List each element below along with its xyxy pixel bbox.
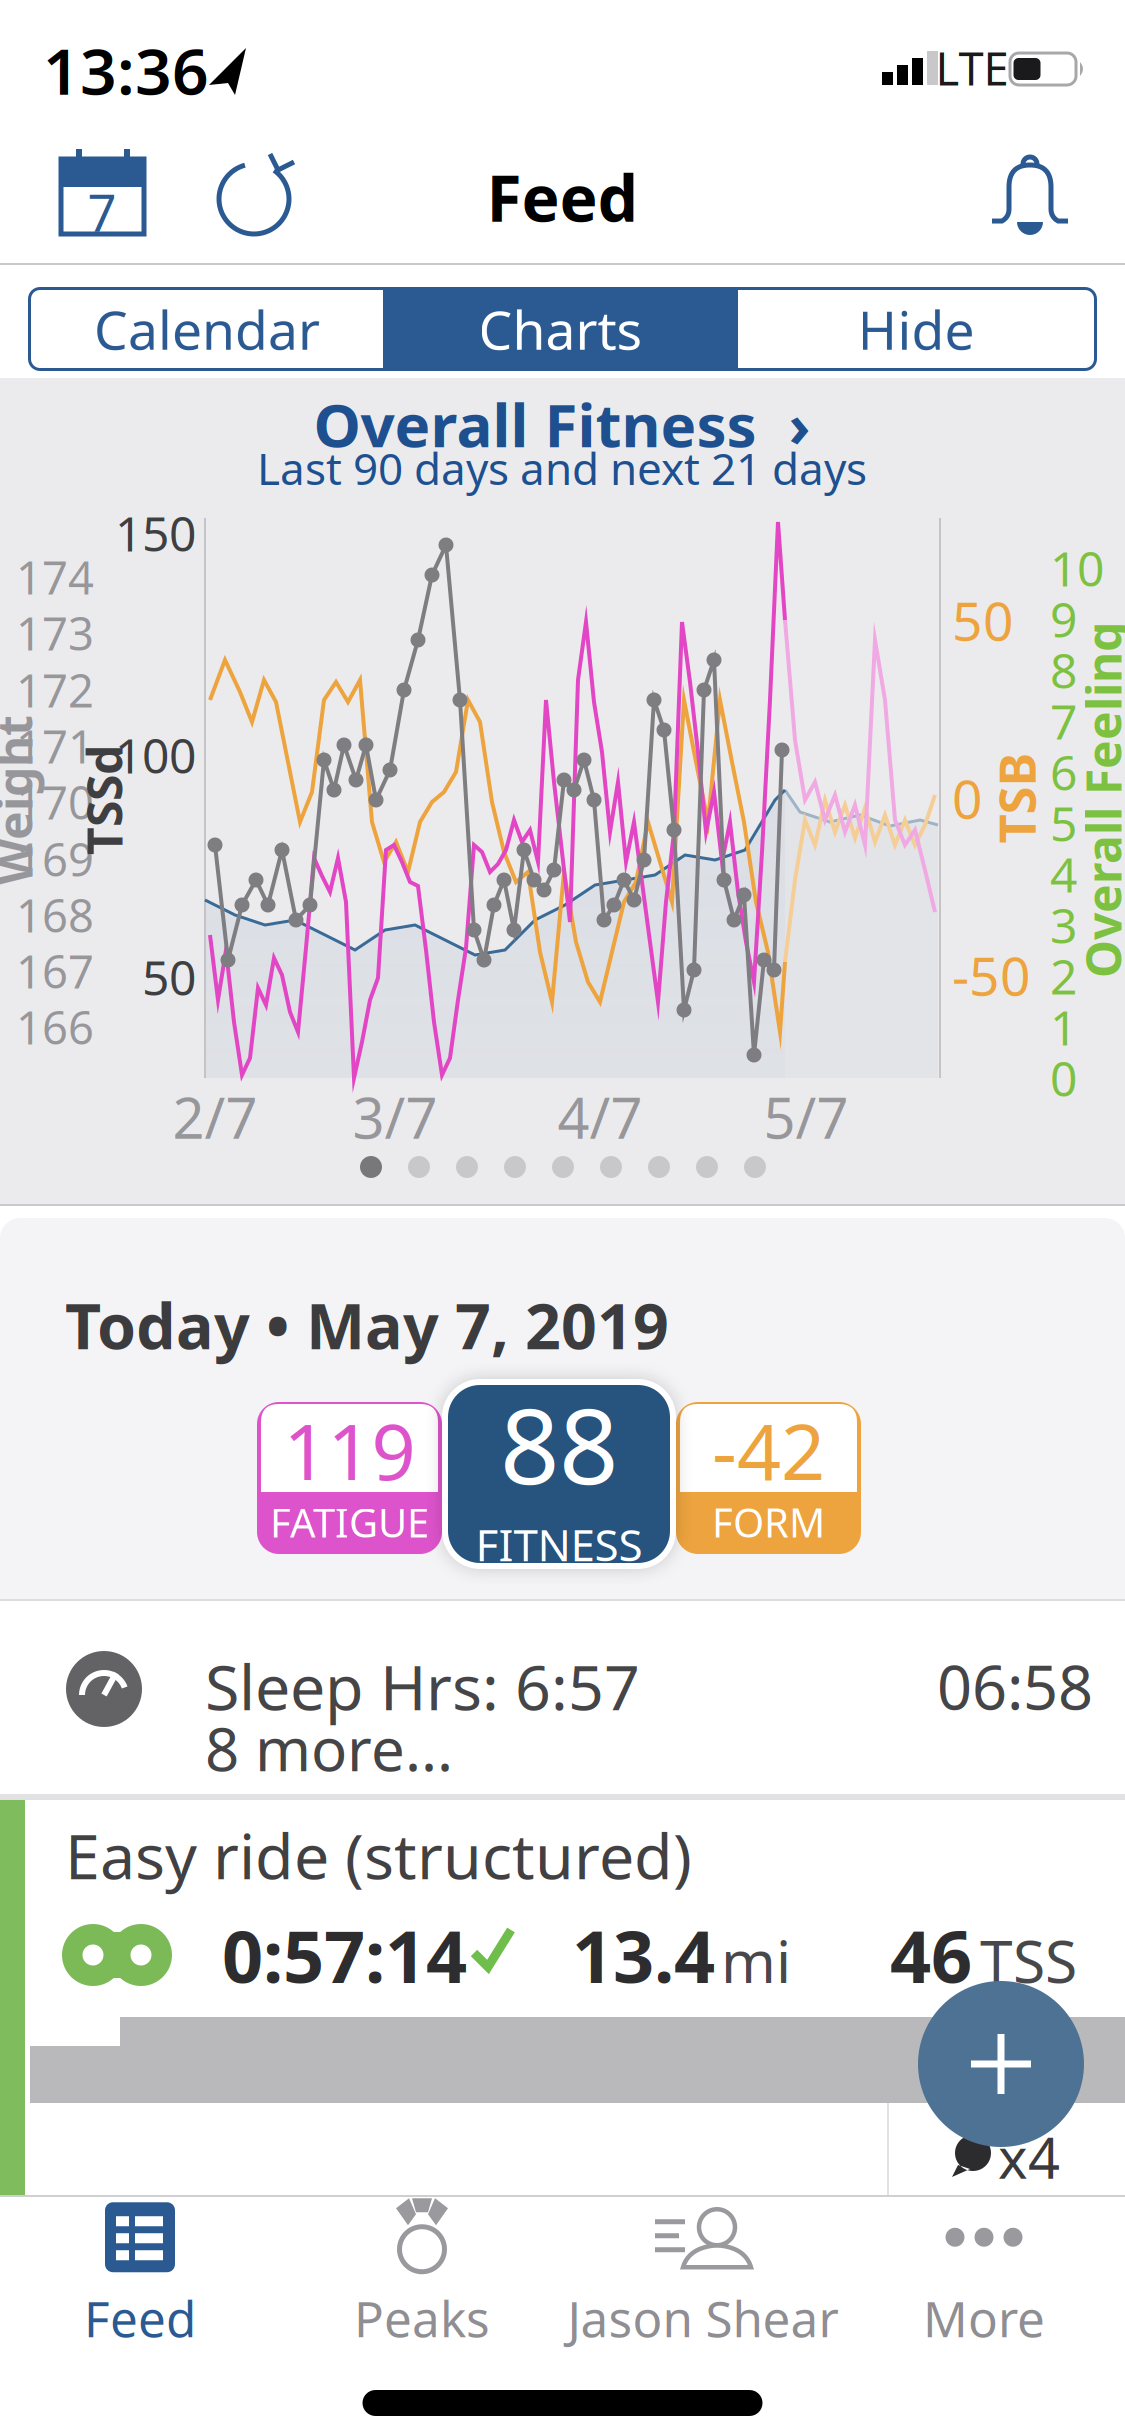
staticText: 6 [1050, 740, 1077, 804]
staticText: 50 [952, 585, 1014, 655]
staticText: Feed [84, 2285, 196, 2351]
staticText: TSS [980, 1921, 1077, 1999]
staticText: 13.4 [572, 1907, 715, 2003]
staticText: 168 [16, 885, 94, 945]
staticText: 0 [1050, 1046, 1077, 1110]
staticText: 88 [500, 1375, 618, 1513]
button[interactable]: Notifications [985, 151, 1075, 241]
staticText: 50 [142, 945, 196, 1009]
staticText: -50 [952, 940, 1031, 1010]
staticText: 4 [1050, 842, 1077, 906]
staticText: 166 [16, 997, 94, 1057]
staticText: Today • May 7, 2019 [65, 1283, 669, 1367]
staticText: Overall Feeling [925, 768, 1125, 832]
staticText: 7 [87, 178, 116, 246]
staticText: Weight [0, 768, 99, 832]
staticText: FORM [712, 1495, 825, 1548]
staticText: 13:36 [43, 27, 209, 112]
staticText: Last 90 days and next 21 days [257, 439, 867, 497]
button[interactable]: Peaks [312, 2195, 532, 2345]
staticText: TSB [970, 764, 1061, 832]
staticText: TSSd [49, 768, 159, 832]
staticText: 7 [1050, 689, 1077, 753]
staticText: 8 [1050, 638, 1077, 702]
staticText: 1 [1050, 995, 1077, 1059]
staticText: Easy ride (structured) [65, 1813, 692, 1897]
staticText: mi [721, 1921, 791, 1999]
staticText: 173 [16, 603, 94, 663]
staticText: Feed [486, 154, 637, 239]
staticText: 9 [1050, 587, 1077, 651]
staticText: 10 [1050, 536, 1104, 600]
staticText: 5/7 [763, 1080, 848, 1154]
button[interactable]: Feed [30, 2195, 250, 2345]
staticText: 8 more... [205, 1708, 453, 1788]
staticText: Sleep Hrs: 6:57 [205, 1644, 640, 1728]
staticText: 170 [16, 772, 94, 832]
staticText: 150 [115, 501, 196, 565]
button[interactable]: Calendar day [52, 147, 152, 247]
staticText: 174 [16, 547, 94, 607]
staticText: 06:58 [937, 1645, 1093, 1727]
staticText: 2/7 [172, 1080, 257, 1154]
staticText: Jason Shear [567, 2285, 838, 2351]
staticText: FITNESS [475, 1515, 642, 1573]
button[interactable]: Charts [383, 290, 738, 368]
staticText: Charts [478, 294, 642, 364]
staticText: More [923, 2285, 1045, 2351]
staticText: 46 [890, 1907, 972, 2003]
button[interactable]: Jason Shear [538, 2195, 868, 2345]
staticText: Calendar [94, 294, 320, 364]
staticText: 169 [16, 829, 94, 889]
staticText: Overall Fitness › [313, 384, 810, 464]
button[interactable]: Easy ride (structured) [0, 1800, 1125, 2195]
button[interactable]: Sleep Hrs: 6:57 [0, 1601, 1125, 1794]
staticText: 119 [283, 1399, 415, 1501]
staticText: LTE [935, 38, 1008, 98]
staticText: 0:57:14 [222, 1907, 467, 2003]
staticText: x4 [998, 2120, 1060, 2194]
button[interactable]: Add [918, 1981, 1084, 2147]
button[interactable]: Calendar [31, 290, 383, 368]
staticText: 5 [1050, 791, 1077, 855]
button[interactable]: Overall Fitness › [313, 384, 810, 464]
button[interactable]: Refresh [208, 152, 300, 244]
staticText: 0 [952, 763, 983, 833]
staticText: 4/7 [557, 1080, 642, 1154]
staticText: FATIGUE [270, 1495, 429, 1548]
staticText: 2 [1050, 944, 1077, 1008]
staticText: 100 [115, 723, 196, 787]
staticText: Peaks [354, 2285, 490, 2351]
staticText: 172 [16, 660, 94, 720]
staticText: 3 [1050, 893, 1077, 957]
staticText: -42 [712, 1399, 825, 1501]
button[interactable]: Hide [738, 290, 1094, 368]
staticText: Hide [857, 294, 974, 364]
staticText: 3/7 [352, 1080, 437, 1154]
button[interactable]: More [874, 2195, 1094, 2345]
staticText: 171 [16, 716, 94, 776]
staticText: 167 [16, 941, 94, 1001]
